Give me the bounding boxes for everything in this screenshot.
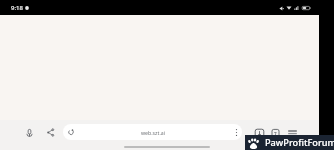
button[interactable]: Voice search	[25, 129, 34, 138]
button[interactable]: Share	[46, 128, 55, 137]
staticText: 9:18	[11, 4, 23, 12]
staticText: 7	[274, 131, 277, 137]
staticText: PawProfitForum	[265, 136, 334, 149]
button[interactable]: web.szt.ai	[63, 124, 242, 140]
button[interactable]: Menu	[287, 128, 298, 139]
button[interactable]: Downloads	[254, 128, 265, 139]
staticText: web.szt.ai	[141, 129, 166, 136]
button[interactable]: Tabs	[270, 128, 281, 139]
